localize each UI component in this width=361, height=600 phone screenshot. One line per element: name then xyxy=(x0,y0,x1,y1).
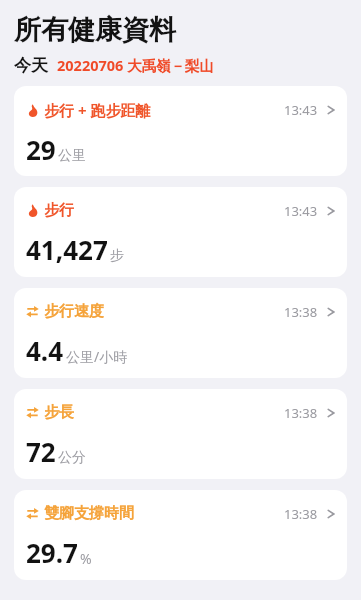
staticText: 步行 xyxy=(44,201,74,220)
staticText: 今天 xyxy=(14,55,48,76)
other: Show details xyxy=(327,204,335,218)
staticText: 所有健康資料 xyxy=(14,13,176,47)
staticText: 13:43 xyxy=(284,101,318,119)
staticText: 公里/小時 xyxy=(66,347,128,366)
staticText: 公分 xyxy=(58,449,86,467)
button[interactable]: 雙腳支撐時間 xyxy=(14,490,347,580)
staticText: 13:38 xyxy=(284,404,318,422)
button[interactable]: 步行 + 跑步距離 xyxy=(14,86,347,176)
staticText: 4.4 xyxy=(26,333,64,368)
other: Show details xyxy=(327,305,335,319)
staticText: 13:43 xyxy=(284,202,318,220)
staticText: 步行 + 跑步距離 xyxy=(44,100,151,120)
staticText: 20220706 大禹嶺－梨山 xyxy=(57,55,215,75)
button[interactable]: 步行 xyxy=(14,187,347,277)
staticText: 13:38 xyxy=(284,505,318,523)
button[interactable]: 步長 xyxy=(14,389,347,479)
staticText: % xyxy=(80,549,92,568)
staticText: 29 xyxy=(26,132,56,167)
staticText: 步 xyxy=(110,247,124,265)
staticText: 41,427 xyxy=(26,232,108,267)
button[interactable]: 步行速度 xyxy=(14,288,347,378)
staticText: 步長 xyxy=(44,403,74,422)
staticText: 步行速度 xyxy=(44,302,104,321)
staticText: 公里 xyxy=(58,147,86,165)
staticText: 29.7 xyxy=(26,535,78,570)
staticText: 雙腳支撐時間 xyxy=(44,504,134,523)
other: Show details xyxy=(327,406,335,420)
other: Show details xyxy=(327,507,335,521)
other: Show details xyxy=(327,103,335,117)
staticText: 72 xyxy=(26,434,56,469)
staticText: 13:38 xyxy=(284,303,318,321)
